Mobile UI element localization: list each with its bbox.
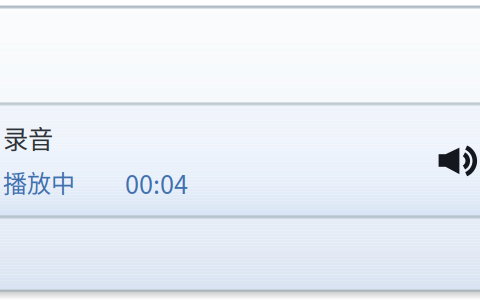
button[interactable]: 录音 bbox=[0, 106, 480, 215]
button[interactable] bbox=[0, 219, 480, 289]
staticText: 录音 bbox=[3, 119, 53, 156]
staticText: 播放中 bbox=[3, 165, 75, 199]
staticText: 00:04 bbox=[125, 165, 188, 201]
